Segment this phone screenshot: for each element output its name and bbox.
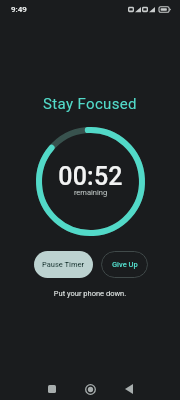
- button[interactable]: Give Up: [101, 251, 148, 278]
- staticText: Give Up: [112, 260, 138, 269]
- button[interactable]: Pause Timer: [34, 251, 93, 278]
- staticText: Stay Focused: [0, 95, 180, 113]
- staticText: 9:49: [11, 5, 27, 14]
- staticText: 00:52: [36, 162, 145, 191]
- button[interactable]: Back: [113, 374, 144, 400]
- staticText: Put your phone down.: [0, 289, 180, 298]
- staticText: remaining: [36, 188, 145, 197]
- staticText: Pause Timer: [42, 260, 85, 269]
- button[interactable]: Home: [75, 374, 106, 400]
- button[interactable]: Recent apps: [36, 374, 67, 400]
